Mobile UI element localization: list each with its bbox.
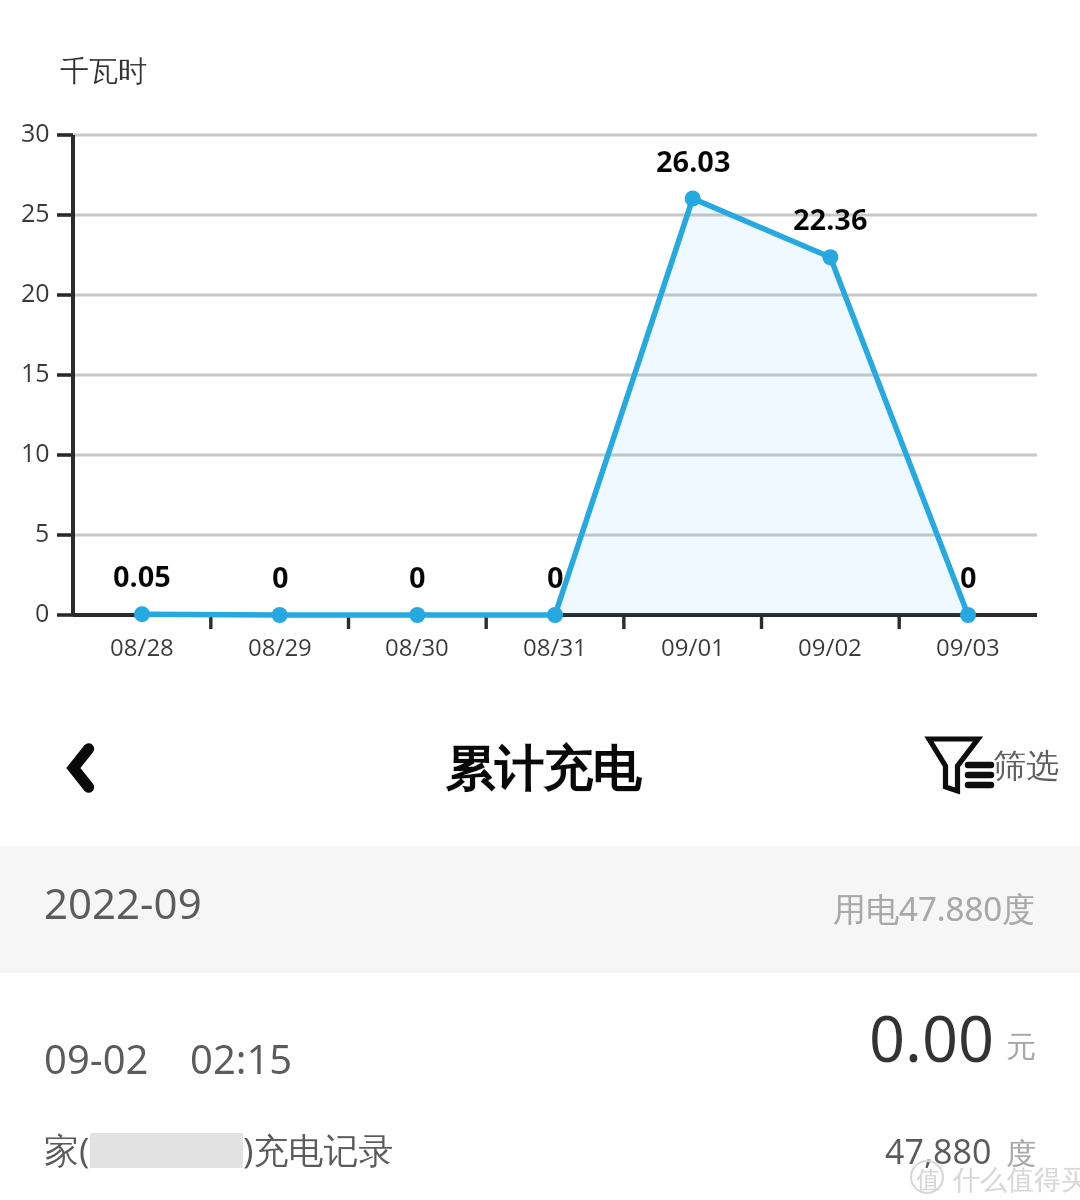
staticText: 0 [960, 557, 977, 596]
staticText: 元 [1006, 1028, 1036, 1066]
staticText: 筛选 [993, 745, 1059, 787]
staticText: 22.36 [793, 199, 868, 238]
staticText: 千瓦时 [60, 53, 147, 90]
staticText: 15 [21, 355, 50, 389]
staticText: 0 [547, 557, 564, 596]
staticText: 09/01 [661, 630, 725, 663]
staticText: 47,880 [885, 1128, 992, 1174]
staticText: 09-02 02:15 [44, 1031, 293, 1085]
staticText: 08/31 [523, 630, 587, 663]
button[interactable]: Back [21, 708, 141, 828]
staticText: 20 [21, 275, 50, 309]
staticText: 用电47.880度 [833, 886, 1036, 931]
staticText: 0.05 [113, 556, 171, 595]
button[interactable]: 09-02 02:15 [0, 973, 1080, 1174]
staticText: 08/28 [110, 630, 174, 663]
staticText: 度 [1006, 1135, 1036, 1173]
staticText: 09/02 [798, 630, 862, 663]
staticText: 08/30 [385, 630, 449, 663]
staticText: 0 [35, 595, 50, 629]
staticText: 值 [916, 1165, 940, 1195]
staticText: 30 [21, 115, 50, 149]
staticText: )充电记录 [243, 1126, 394, 1174]
staticText: 0 [409, 557, 426, 596]
staticText: 2022-09 [44, 874, 202, 931]
staticText: 5 [35, 515, 50, 549]
staticText: 08/29 [248, 630, 312, 663]
staticText: 累计充电 [445, 739, 641, 801]
staticText: 09/03 [936, 630, 1000, 663]
staticText: 家( [44, 1126, 90, 1174]
staticText: 26.03 [656, 141, 731, 180]
button[interactable]: 筛选 [900, 708, 1080, 838]
staticText: 0.00 [869, 995, 994, 1081]
staticText: 10 [21, 435, 50, 469]
staticText: 什么值得买 [953, 1163, 1080, 1197]
button[interactable]: 2022-09 [0, 846, 1080, 973]
staticText: 0 [272, 557, 289, 596]
staticText: 25 [21, 195, 50, 229]
